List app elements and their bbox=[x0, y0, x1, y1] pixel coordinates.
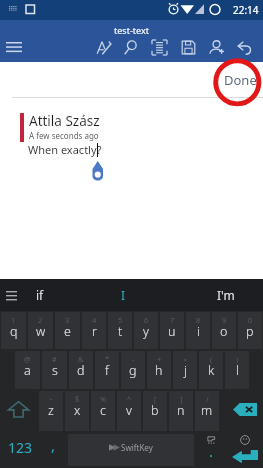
staticText: x bbox=[74, 402, 81, 419]
staticText: 7 bbox=[170, 315, 175, 325]
button[interactable]: [ bbox=[143, 391, 167, 431]
staticText: b bbox=[151, 402, 159, 419]
button[interactable]: 7 bbox=[160, 312, 184, 349]
staticText: , bbox=[51, 435, 56, 455]
staticText: y bbox=[143, 323, 149, 340]
staticText: ~ bbox=[49, 394, 54, 404]
staticText: Attila Szász bbox=[29, 112, 100, 130]
staticText: [ bbox=[154, 394, 157, 404]
staticText: a bbox=[24, 362, 31, 379]
button[interactable]: 5 bbox=[108, 312, 132, 349]
staticText: $ bbox=[75, 394, 80, 404]
button[interactable]: 9 bbox=[212, 312, 236, 349]
staticText: ^ bbox=[127, 394, 132, 404]
staticText: * bbox=[105, 354, 110, 364]
button[interactable]: 6 bbox=[134, 312, 158, 349]
staticText: I'm bbox=[217, 287, 235, 303]
button[interactable]: if bbox=[22, 279, 58, 311]
staticText: 8 bbox=[196, 315, 201, 325]
staticText: / bbox=[206, 394, 209, 404]
button[interactable]: / bbox=[195, 391, 219, 431]
staticText: t bbox=[118, 323, 123, 340]
staticText: g bbox=[129, 362, 137, 379]
staticText: j bbox=[184, 362, 187, 379]
button[interactable]: = bbox=[173, 351, 197, 389]
button[interactable]: ^ bbox=[117, 391, 141, 431]
button[interactable]: Enter bbox=[227, 432, 263, 468]
staticText: c bbox=[100, 402, 106, 419]
button[interactable]: 123 bbox=[0, 432, 40, 468]
button[interactable]: Format bbox=[146, 35, 172, 60]
button[interactable]: 8 bbox=[186, 312, 210, 349]
button[interactable]: Backspace bbox=[220, 390, 263, 432]
staticText: @ bbox=[24, 354, 31, 364]
staticText: l bbox=[236, 362, 239, 379]
staticText: A few seconds ago bbox=[29, 130, 99, 141]
button[interactable]: Undo bbox=[231, 35, 257, 60]
staticText: - bbox=[132, 354, 135, 364]
button[interactable]: 3 bbox=[55, 312, 80, 349]
button[interactable]: Add person bbox=[203, 35, 229, 60]
button[interactable]: ] bbox=[169, 391, 193, 431]
button[interactable]: Menu bbox=[1, 34, 27, 59]
staticText: 9 bbox=[222, 315, 227, 325]
button[interactable]: Space bbox=[68, 434, 194, 466]
button[interactable]: 4 bbox=[82, 312, 106, 349]
button[interactable]: . bbox=[195, 432, 227, 468]
button[interactable]: + bbox=[147, 351, 171, 389]
staticText: q bbox=[10, 323, 18, 340]
button[interactable]: & bbox=[69, 351, 93, 389]
button[interactable]: Save bbox=[175, 35, 201, 60]
button[interactable]: ( bbox=[199, 351, 223, 389]
staticText: ] bbox=[180, 394, 183, 404]
button[interactable]: I bbox=[58, 279, 188, 311]
staticText: 0 bbox=[248, 315, 253, 325]
button[interactable]: Shift bbox=[0, 390, 38, 432]
staticText: # bbox=[52, 354, 57, 364]
staticText: 3 bbox=[65, 315, 70, 325]
button[interactable]: , bbox=[40, 432, 67, 468]
button[interactable]: Done bbox=[224, 71, 257, 89]
staticText: k bbox=[208, 362, 215, 379]
staticText: n bbox=[177, 402, 185, 419]
button[interactable]: @ bbox=[15, 351, 40, 389]
staticText: z bbox=[48, 402, 54, 419]
staticText: u bbox=[168, 323, 176, 340]
button[interactable]: # bbox=[42, 351, 67, 389]
staticText: 5 bbox=[118, 315, 123, 325]
staticText: = bbox=[183, 354, 188, 364]
button[interactable]: ~ bbox=[39, 391, 63, 431]
staticText: 6 bbox=[144, 315, 149, 325]
staticText: m bbox=[201, 402, 213, 419]
button[interactable]: * bbox=[95, 351, 119, 389]
staticText: ) bbox=[236, 354, 239, 364]
staticText: d bbox=[77, 362, 85, 379]
staticText: r bbox=[92, 323, 97, 340]
staticText: 2 bbox=[38, 315, 43, 325]
staticText: 22:14 bbox=[233, 3, 259, 17]
button[interactable]: 2 bbox=[28, 312, 53, 349]
button[interactable]: % bbox=[91, 391, 115, 431]
staticText: test-text bbox=[114, 24, 149, 36]
staticText: s bbox=[52, 362, 58, 379]
button[interactable]: I'm bbox=[188, 279, 263, 311]
staticText: & bbox=[78, 354, 84, 364]
button[interactable]: $ bbox=[65, 391, 89, 431]
staticText: 1 bbox=[11, 315, 16, 325]
staticText: if bbox=[36, 287, 44, 303]
button[interactable]: - bbox=[121, 351, 145, 389]
button[interactable]: 0 bbox=[238, 312, 262, 349]
staticText: 4 bbox=[92, 315, 97, 325]
staticText: 123 bbox=[8, 438, 33, 457]
staticText: w bbox=[36, 323, 46, 340]
button[interactable]: Draw bbox=[90, 35, 116, 60]
button[interactable]: ) bbox=[225, 351, 249, 389]
staticText: f bbox=[105, 362, 109, 379]
staticText: o bbox=[220, 323, 228, 340]
button[interactable]: Keyboard menu bbox=[0, 279, 22, 311]
staticText: When exactly? bbox=[28, 142, 102, 157]
button[interactable]: Search bbox=[118, 35, 144, 60]
button[interactable]: 1 bbox=[1, 312, 26, 349]
staticText: v bbox=[126, 402, 132, 419]
staticText: . bbox=[209, 441, 214, 461]
